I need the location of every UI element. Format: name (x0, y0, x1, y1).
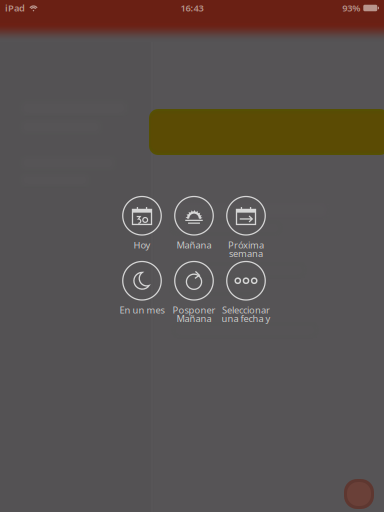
button[interactable]: Próxima semana (220, 196, 272, 259)
staticText: 16:43 (180, 2, 203, 14)
button[interactable]: Seleccionar una fecha y (220, 261, 272, 324)
staticText: una fecha y (221, 312, 270, 325)
staticText: Seleccionar (222, 304, 270, 316)
staticText: semana (229, 247, 263, 260)
staticText: Próxima (228, 239, 264, 251)
staticText: 93% (342, 2, 360, 14)
staticText: iPad (5, 2, 25, 14)
button[interactable]: Posponer Mañana (168, 261, 220, 324)
staticText: Hoy (133, 239, 150, 251)
staticText: Mañana (176, 312, 211, 325)
staticText: Posponer (172, 304, 215, 316)
button[interactable]: En un mes (116, 261, 168, 324)
staticText: En un mes (119, 304, 164, 316)
button[interactable]: Hoy (116, 196, 168, 259)
staticText: Mañana (176, 239, 211, 251)
button[interactable]: Mañana (168, 196, 220, 259)
